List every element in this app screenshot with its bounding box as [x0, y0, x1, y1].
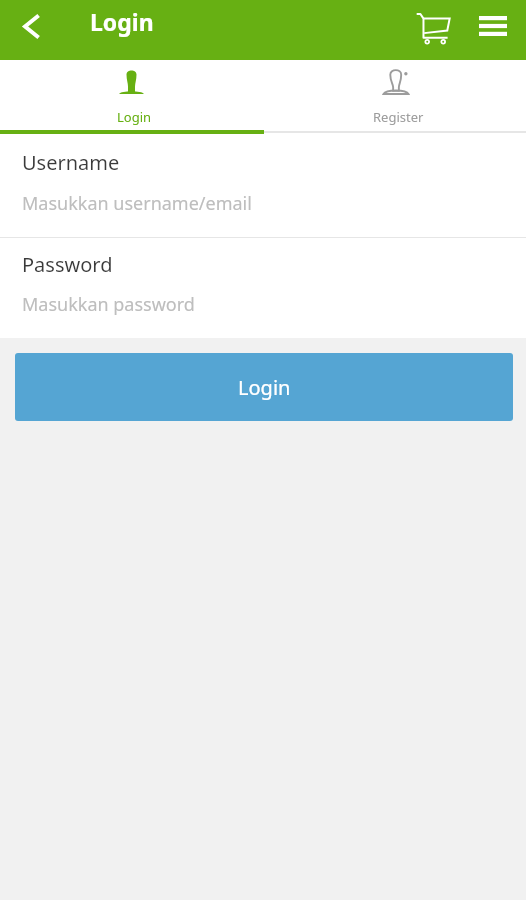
button[interactable]: Register: [263, 60, 526, 130]
staticText: Login: [117, 108, 152, 126]
button[interactable]: Username: [0, 134, 526, 236]
staticText: Masukkan username/email: [22, 191, 252, 216]
staticText: Password: [22, 251, 113, 278]
staticText: Register: [373, 108, 424, 126]
button[interactable]: Password: [0, 237, 526, 338]
button[interactable]: Menu: [469, 2, 517, 50]
button[interactable]: Shopping cart: [409, 4, 457, 52]
staticText: Login: [90, 6, 154, 37]
button[interactable]: Login: [15, 353, 513, 421]
button[interactable]: Back: [7, 2, 55, 50]
staticText: Login: [238, 374, 291, 401]
button[interactable]: Login: [0, 60, 263, 130]
staticText: Masukkan password: [22, 292, 195, 317]
staticText: Username: [22, 149, 120, 176]
